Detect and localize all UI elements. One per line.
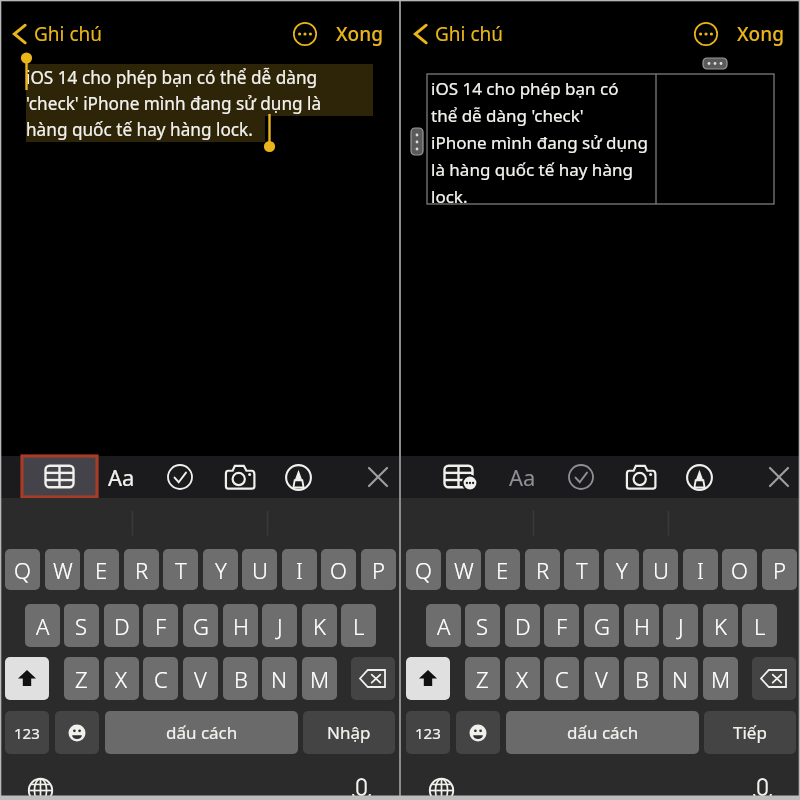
button[interactable]: S [465,604,500,647]
button[interactable]: Shift [5,657,49,700]
button[interactable]: I [683,549,718,590]
button[interactable]: K [302,604,337,647]
button[interactable]: Change keyboard [423,772,460,800]
button[interactable]: Markup [277,457,319,497]
button[interactable]: F [143,604,178,647]
button[interactable]: Close [357,457,399,497]
button[interactable]: 123 [406,711,450,754]
staticText: R [536,555,550,585]
button[interactable]: Xong [735,17,786,51]
button[interactable]: dấu cách [105,711,298,754]
button[interactable]: N [663,657,698,700]
button[interactable]: B [624,657,659,700]
button[interactable]: Markup [678,457,720,497]
button[interactable]: M [302,657,337,700]
button[interactable]: Y [604,549,639,590]
button[interactable]: B [223,657,258,700]
staticText: Aa [509,462,536,492]
button[interactable]: U [643,549,678,590]
staticText: W [53,555,73,585]
button[interactable]: G [183,604,218,647]
button[interactable]: D [505,604,540,647]
button[interactable]: Checklist [560,457,602,497]
button[interactable]: More options [694,22,718,46]
button[interactable]: Ghi chú [401,15,514,53]
button[interactable]: Checklist [159,457,201,497]
button[interactable]: V [183,657,218,700]
button[interactable]: Table [22,456,97,497]
button[interactable]: J [663,604,698,647]
button[interactable]: W [446,549,481,590]
staticText: A [437,611,451,641]
button[interactable]: M [703,657,738,700]
button[interactable]: J [262,604,297,647]
button[interactable]: P [762,549,797,590]
button[interactable]: L [341,604,376,647]
button[interactable]: C [544,657,579,700]
button[interactable]: X [505,657,540,700]
staticText: N [672,664,689,694]
button[interactable]: F [544,604,579,647]
staticText: H [233,611,249,641]
button[interactable]: R [525,549,560,590]
button[interactable]: More options [293,22,317,46]
button[interactable]: W [45,549,80,590]
button[interactable]: Z [64,657,99,700]
button[interactable]: A [25,604,60,647]
button[interactable]: Emoji [456,711,500,754]
button[interactable]: Z [465,657,500,700]
button[interactable]: Q [406,549,441,590]
button[interactable]: U [242,549,277,590]
staticText: S [75,611,88,641]
button[interactable]: 123 [5,711,49,754]
button[interactable]: Close [758,457,800,497]
button[interactable]: T [163,549,198,590]
button[interactable]: A [426,604,461,647]
button[interactable]: Dictate [343,772,380,800]
staticText: I [296,555,303,585]
button[interactable]: D [104,604,139,647]
button[interactable]: S [64,604,99,647]
button[interactable]: Q [5,549,40,590]
button[interactable]: Change keyboard [22,772,59,800]
staticText: J [678,611,684,641]
button[interactable]: C [143,657,178,700]
button[interactable]: Tiếp [704,711,796,754]
button[interactable]: Format [501,457,543,497]
button[interactable]: K [703,604,738,647]
button[interactable]: Format [100,457,142,497]
button[interactable]: Nhập [303,711,395,754]
button[interactable]: T [564,549,599,590]
button[interactable]: Backspace [351,657,395,700]
staticText: Ghi chú [435,21,504,47]
button[interactable]: G [584,604,619,647]
button[interactable]: Table [423,456,498,497]
staticText: M [310,664,330,694]
button[interactable]: Camera [219,457,261,497]
staticText: V [194,664,207,694]
button[interactable]: N [262,657,297,700]
button[interactable]: Xong [334,17,385,51]
button[interactable]: O [722,549,757,590]
button[interactable]: Emoji [55,711,99,754]
button[interactable]: Y [203,549,238,590]
button[interactable]: O [321,549,356,590]
button[interactable]: L [742,604,777,647]
button[interactable]: P [361,549,396,590]
button[interactable]: H [223,604,258,647]
button[interactable]: R [124,549,159,590]
button[interactable]: E [84,549,119,590]
staticText: E [496,555,509,585]
button[interactable]: dấu cách [506,711,699,754]
button[interactable]: I [282,549,317,590]
button[interactable]: Ghi chú [0,15,113,53]
button[interactable]: Dictate [744,772,781,800]
button[interactable]: V [584,657,619,700]
staticText: C [154,664,168,694]
button[interactable]: X [104,657,139,700]
button[interactable]: E [485,549,520,590]
button[interactable]: H [624,604,659,647]
button[interactable]: Shift [406,657,450,700]
button[interactable]: Backspace [752,657,796,700]
button[interactable]: Camera [620,457,662,497]
